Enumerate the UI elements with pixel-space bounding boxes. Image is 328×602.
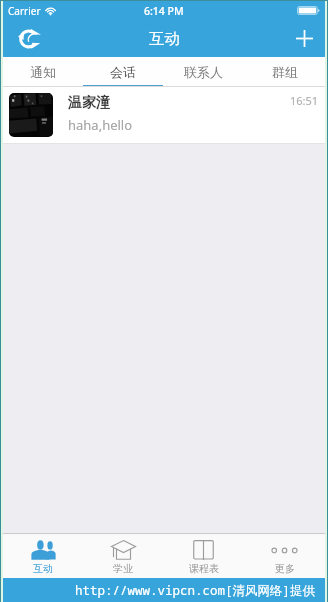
- button[interactable]: 更多: [244, 534, 325, 578]
- staticText: 群组: [272, 64, 298, 80]
- button[interactable]: 学业: [83, 534, 163, 578]
- staticText: http://www.vipcn.com[清风网络]提供: [75, 582, 316, 599]
- staticText: 互动: [149, 29, 180, 49]
- button[interactable]: 温家潼: [3, 87, 325, 144]
- button[interactable]: 通知: [3, 57, 83, 87]
- staticText: 互动: [33, 562, 53, 575]
- button[interactable]: Add: [290, 24, 318, 52]
- staticText: 更多: [275, 562, 295, 575]
- button[interactable]: Logo: [15, 25, 43, 53]
- staticText: 学业: [113, 562, 133, 575]
- staticText: 16:51: [290, 93, 319, 108]
- staticText: haha,hello: [68, 116, 133, 134]
- staticText: Carrier: [8, 4, 41, 18]
- button[interactable]: 课程表: [163, 534, 244, 578]
- staticText: 课程表: [189, 562, 219, 575]
- staticText: 联系人: [184, 64, 223, 80]
- staticText: 温家潼: [68, 94, 110, 112]
- button[interactable]: 联系人: [163, 57, 244, 87]
- button[interactable]: 互动: [3, 534, 83, 578]
- staticText: 通知: [30, 64, 56, 80]
- button[interactable]: 会话: [83, 57, 163, 87]
- staticText: 6:14 PM: [144, 4, 184, 18]
- button[interactable]: 群组: [244, 57, 325, 87]
- staticText: 会话: [110, 64, 136, 80]
